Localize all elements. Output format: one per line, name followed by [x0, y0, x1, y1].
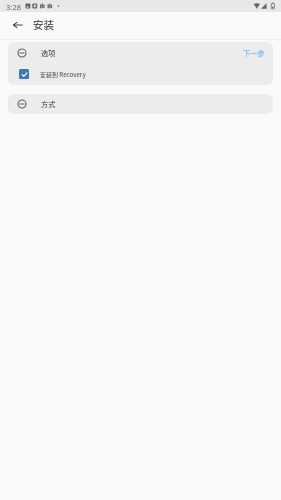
button[interactable]: 方式 — [8, 94, 273, 114]
staticText: 安装 — [33, 17, 54, 32]
button[interactable]: 安装到 Recovery — [8, 63, 273, 85]
staticText: 3:28 — [6, 2, 22, 12]
staticText: 选项 — [41, 48, 56, 58]
staticText: 方式 — [41, 99, 56, 109]
button[interactable]: 选项 — [8, 42, 273, 63]
staticText: 下一步 — [243, 48, 265, 58]
button[interactable]: 下一步 — [234, 44, 273, 62]
staticText: 安装到 Recovery — [40, 70, 86, 79]
button[interactable]: Back — [12, 19, 23, 30]
